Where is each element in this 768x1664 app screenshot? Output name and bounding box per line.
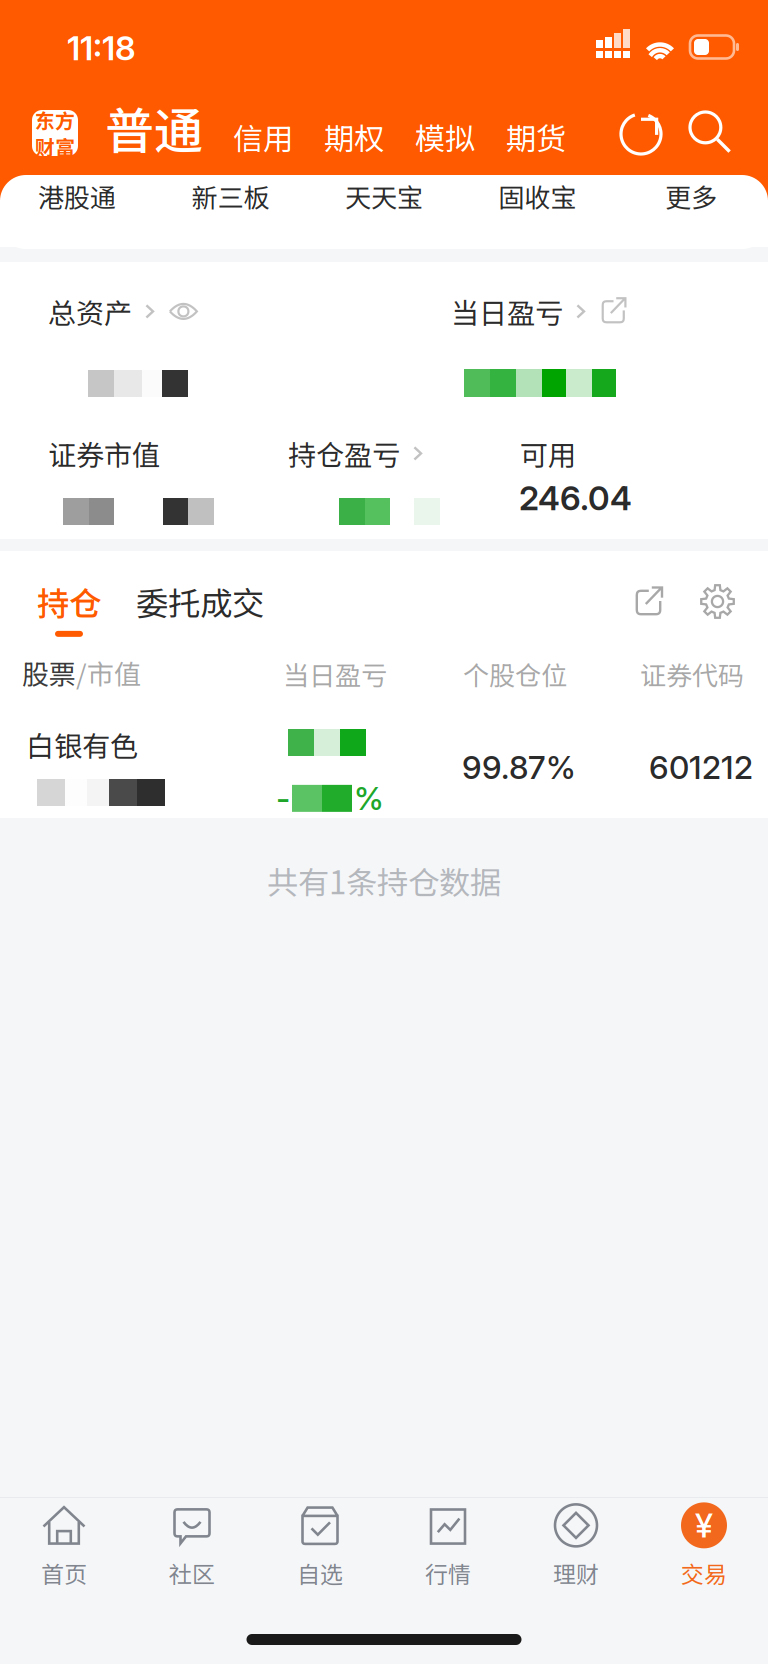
staticText: % bbox=[354, 779, 384, 818]
staticText: 固收宝 bbox=[499, 177, 577, 215]
staticText: 行情 bbox=[425, 1556, 471, 1590]
staticText: 11:18 bbox=[67, 28, 136, 68]
button[interactable]: 自选 bbox=[256, 1498, 384, 1592]
staticText: 共有1条持仓数据 bbox=[267, 858, 501, 903]
staticText: - bbox=[276, 779, 290, 818]
button[interactable]: 信用 bbox=[233, 115, 293, 159]
staticText: 信用 bbox=[233, 115, 293, 159]
button[interactable]: 模拟 bbox=[415, 115, 475, 159]
staticText: 当日盈亏 bbox=[451, 291, 563, 332]
staticText: /市值 bbox=[76, 653, 141, 692]
button[interactable]: 总资产 bbox=[48, 291, 198, 332]
button[interactable]: 新三板 bbox=[154, 176, 307, 216]
button[interactable]: 分享 bbox=[632, 586, 664, 618]
staticText: 当日盈亏 bbox=[283, 655, 387, 693]
staticText: 601212 bbox=[649, 748, 753, 787]
button[interactable]: 行情 bbox=[384, 1498, 512, 1592]
button[interactable]: 期权 bbox=[324, 115, 384, 159]
staticText: 东方 bbox=[35, 105, 75, 134]
staticText: 持仓盈亏 bbox=[288, 433, 400, 474]
staticText: 总资产 bbox=[48, 291, 132, 332]
staticText: 首页 bbox=[41, 1556, 87, 1590]
button[interactable]: 天天宝 bbox=[307, 176, 461, 216]
button[interactable]: 理财 bbox=[512, 1498, 640, 1592]
button[interactable]: ¥ bbox=[640, 1498, 768, 1592]
button[interactable]: 搜索 bbox=[690, 112, 734, 156]
button[interactable]: 持仓 bbox=[37, 578, 101, 637]
staticText: 社区 bbox=[169, 1556, 215, 1590]
staticText: 证券市值 bbox=[48, 433, 160, 474]
staticText: 理财 bbox=[553, 1556, 599, 1590]
button[interactable]: 刷新 bbox=[619, 112, 663, 156]
staticText: 持仓 bbox=[37, 578, 101, 625]
button[interactable]: 社区 bbox=[128, 1498, 256, 1592]
button[interactable]: 更多 bbox=[614, 176, 768, 216]
staticText: 246.04 bbox=[519, 478, 632, 518]
button[interactable]: 普通 bbox=[105, 92, 203, 163]
button[interactable]: 港股通 bbox=[0, 176, 154, 216]
button[interactable]: 设置 bbox=[700, 584, 735, 619]
button[interactable]: 东方财富 bbox=[32, 110, 78, 156]
staticText: 可用 bbox=[520, 433, 576, 474]
staticText: 股票 bbox=[22, 653, 76, 692]
button[interactable]: 委托成交 bbox=[136, 578, 264, 625]
staticText: 交易 bbox=[681, 1556, 727, 1590]
staticText: 期货 bbox=[506, 115, 566, 159]
staticText: 更多 bbox=[665, 177, 717, 215]
staticText: 期权 bbox=[324, 115, 384, 159]
button[interactable]: 持仓盈亏 bbox=[288, 433, 423, 474]
staticText: 委托成交 bbox=[136, 578, 264, 625]
staticText: 自选 bbox=[297, 1556, 343, 1590]
button[interactable]: 期货 bbox=[506, 115, 566, 159]
button[interactable]: 固收宝 bbox=[461, 176, 614, 216]
staticText: 新三板 bbox=[191, 177, 269, 215]
staticText: 模拟 bbox=[415, 115, 475, 159]
staticText: 白银有色 bbox=[26, 724, 138, 765]
staticText: 99.87% bbox=[462, 748, 576, 787]
staticText: 普通 bbox=[105, 92, 203, 163]
staticText: 证券代码 bbox=[640, 655, 744, 693]
staticText: ¥ bbox=[695, 1505, 713, 1545]
staticText: 港股通 bbox=[38, 177, 116, 215]
button[interactable]: 当日盈亏 bbox=[451, 291, 627, 332]
staticText: 财富 bbox=[35, 132, 75, 161]
staticText: 天天宝 bbox=[345, 177, 423, 215]
staticText: 个股仓位 bbox=[463, 655, 567, 693]
button[interactable]: 首页 bbox=[0, 1498, 128, 1592]
